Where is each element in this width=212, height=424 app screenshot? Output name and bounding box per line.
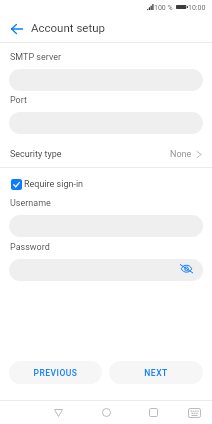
button[interactable]: NEXT bbox=[109, 361, 203, 384]
staticText: Port bbox=[10, 95, 27, 106]
staticText: None bbox=[170, 149, 192, 160]
button[interactable]: Home bbox=[95, 401, 118, 424]
staticText: Account setup bbox=[31, 21, 105, 34]
button[interactable]: Show password bbox=[177, 259, 195, 277]
button[interactable]: Hide keyboard bbox=[183, 401, 206, 424]
staticText: SMTP server bbox=[10, 52, 62, 63]
button[interactable]: Back bbox=[4, 16, 29, 41]
staticText: NEXT bbox=[144, 368, 168, 378]
button[interactable]: Require sign-in bbox=[11, 176, 90, 193]
staticText: PREVIOUS bbox=[33, 368, 78, 378]
button[interactable]: Back bbox=[47, 401, 70, 424]
button[interactable]: Recent apps bbox=[142, 401, 165, 424]
staticText: Security type bbox=[10, 149, 62, 160]
staticText: 100 % bbox=[154, 4, 173, 12]
staticText: Require sign-in bbox=[24, 179, 84, 190]
staticText: 10:00 bbox=[188, 4, 206, 12]
staticText: Username bbox=[10, 198, 51, 209]
button[interactable]: Security type bbox=[0, 143, 212, 166]
button[interactable]: PREVIOUS bbox=[9, 361, 102, 384]
staticText: Password bbox=[10, 242, 50, 253]
